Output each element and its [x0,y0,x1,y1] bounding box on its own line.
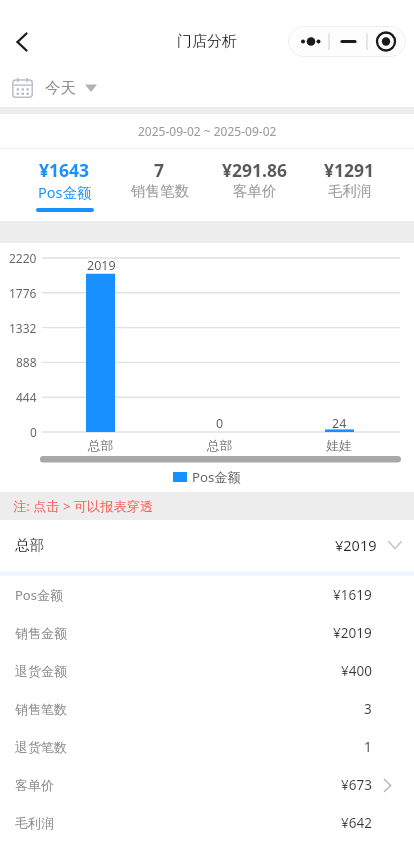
staticText: ¥291.86 [222,158,287,182]
button[interactable]: ¥291.86 [207,149,302,206]
staticText: 2025-09-02 ~ 2025-09-02 [138,123,277,139]
staticText: Pos金额 [38,182,92,202]
staticText: ¥642 [341,814,372,832]
staticText: 销售笔数 [131,182,189,200]
button[interactable]: 销售金额 [0,614,414,652]
staticText: ¥1619 [333,586,372,604]
staticText: 今天 [45,78,76,97]
staticText: 客单价 [15,777,54,793]
button[interactable]: 退货笔数 [0,728,414,766]
staticText: 毛利润 [328,182,372,200]
staticText: 0 [216,415,224,432]
staticText: ¥2019 [333,624,372,642]
staticText: ¥1291 [324,158,375,182]
staticText: 7 [154,158,165,182]
staticText: 毛利润 [15,815,54,831]
staticText: 总部 [88,438,114,454]
button[interactable]: ¥1643 [17,149,112,212]
staticText: 444 [16,389,37,405]
staticText: 退货金额 [15,663,67,679]
staticText: ¥673 [341,776,372,794]
staticText: Pos金额 [192,468,241,486]
button[interactable]: 总部 [0,520,414,570]
staticText: ¥1643 [39,158,90,182]
button[interactable]: 客单价 [0,766,414,804]
button[interactable]: 今天 [12,68,97,107]
staticText: 退货笔数 [15,739,67,755]
staticText: 1 [364,738,372,756]
staticText: 3 [364,700,372,718]
staticText: 娃娃 [326,438,352,454]
button[interactable]: ¥1291 [302,149,397,206]
button[interactable]: Back [6,26,38,58]
button[interactable]: 销售笔数 [0,690,414,728]
staticText: 2019 [87,257,116,274]
staticText: 销售金额 [15,625,67,641]
staticText: 24 [332,415,347,432]
button[interactable]: 7 [112,149,207,206]
staticText: 0 [30,424,37,440]
staticText: 888 [16,354,37,370]
staticText: 总部 [207,438,233,454]
button[interactable]: 毛利润 [0,804,414,842]
staticText: Pos金额 [15,586,63,604]
button[interactable]: Mini program menu [288,26,406,57]
button[interactable]: Pos金额 [0,576,414,614]
button[interactable]: 退货金额 [0,652,414,690]
staticText: 注: 点击 > 可以报表穿透 [13,497,154,515]
staticText: ¥400 [341,662,372,680]
staticText: 销售笔数 [15,701,67,717]
staticText: 门店分析 [177,32,237,51]
staticText: 1776 [9,285,37,301]
staticText: 总部 [15,536,44,554]
staticText: 2220 [9,250,37,266]
staticText: 客单价 [233,182,277,200]
staticText: 1332 [9,320,37,336]
staticText: ¥2019 [335,535,377,555]
